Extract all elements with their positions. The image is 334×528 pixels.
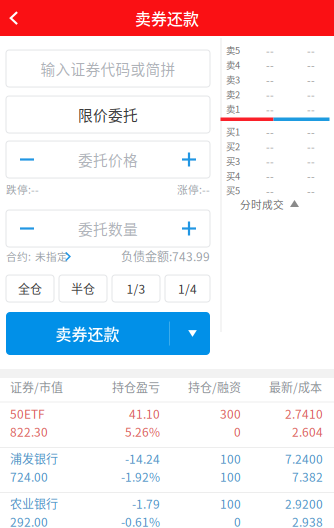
staticText: -14.24	[125, 450, 160, 467]
staticText: 50ETF	[10, 405, 45, 422]
staticText: 负债金额:743.99	[121, 247, 210, 265]
staticText: 724.00	[10, 468, 48, 485]
button[interactable]: More order types	[170, 312, 210, 355]
staticText: 1/4	[178, 280, 197, 297]
staticText: 7.382	[292, 468, 323, 485]
staticText: --	[266, 153, 274, 169]
button[interactable]: 农业银行	[0, 493, 334, 528]
staticText: 持仓/融资	[188, 378, 241, 396]
button[interactable]: 合约: 未指定	[6, 249, 76, 263]
staticText: --	[266, 138, 274, 154]
staticText: --	[307, 101, 315, 116]
button[interactable]: 限价委托	[6, 96, 210, 133]
staticText: 卖4	[226, 58, 240, 71]
staticText: 卖3	[226, 73, 240, 86]
staticText: 2.938	[292, 513, 323, 528]
staticText: 300	[220, 405, 241, 422]
staticText: 5.26%	[125, 423, 160, 440]
staticText: 委托价格	[78, 149, 138, 170]
staticText: --	[307, 183, 315, 198]
staticText: 买1	[226, 125, 240, 138]
button[interactable]: 全仓	[6, 275, 54, 302]
staticText: 限价委托	[78, 104, 138, 125]
staticText: 卖5	[226, 43, 240, 57]
staticText: 半仓	[71, 280, 95, 297]
staticText: --	[266, 86, 274, 102]
staticText: --	[307, 168, 315, 183]
staticText: 全仓	[18, 280, 42, 297]
staticText: 292.00	[10, 513, 48, 528]
staticText: 买3	[226, 154, 240, 168]
staticText: 2.604	[292, 423, 323, 440]
staticText: 100	[220, 468, 241, 485]
staticText: 卖1	[226, 102, 240, 115]
staticText: 持仓盈亏	[112, 378, 160, 396]
button[interactable]: Back	[0, 1, 28, 35]
staticText: -1.79	[132, 495, 160, 512]
button[interactable]: 1/4	[165, 275, 210, 302]
staticText: --	[307, 86, 315, 102]
staticText: 证券/市值	[10, 378, 63, 396]
staticText: 2.9200	[285, 495, 323, 512]
staticText: 100	[220, 495, 241, 512]
staticText: --	[266, 168, 274, 183]
staticText: 买2	[226, 139, 240, 153]
staticText: 100	[220, 450, 241, 467]
button[interactable]: Increase 委托价格	[169, 142, 209, 177]
staticText: 买4	[226, 169, 240, 182]
button[interactable]: 卖券还款	[6, 312, 169, 355]
button[interactable]: Increase 委托数量	[169, 211, 209, 246]
staticText: 0	[234, 423, 241, 440]
button[interactable]: 分时成交	[240, 197, 320, 211]
button[interactable]: 1/3	[112, 275, 160, 302]
staticText: --	[266, 72, 274, 87]
staticText: 跌停:--	[6, 181, 39, 197]
staticText: 输入证券代码或简拼	[40, 58, 175, 79]
staticText: 卖券还款	[135, 6, 199, 30]
staticText: 7.2400	[285, 450, 323, 467]
staticText: -0.61%	[121, 513, 160, 528]
staticText: --	[266, 124, 274, 139]
staticText: 农业银行	[10, 495, 58, 512]
staticText: --	[266, 42, 274, 58]
staticText: 最新/成本	[269, 378, 322, 396]
staticText: 买5	[226, 183, 240, 197]
staticText: --	[266, 183, 274, 198]
button[interactable]: 50ETF	[0, 403, 334, 447]
staticText: -1.92%	[121, 468, 160, 485]
button[interactable]: 浦发银行	[0, 448, 334, 492]
staticText: --	[307, 42, 315, 58]
staticText: --	[307, 124, 315, 139]
staticText: --	[307, 138, 315, 154]
staticText: 1/3	[126, 280, 145, 297]
staticText: 分时成交	[240, 196, 284, 212]
staticText: 0	[234, 513, 241, 528]
staticText: --	[266, 57, 274, 72]
staticText: 2.7410	[285, 405, 323, 422]
staticText: --	[266, 101, 274, 116]
button[interactable]: Decrease 委托数量	[7, 211, 47, 246]
button[interactable]: 半仓	[59, 275, 107, 302]
staticText: 浦发银行	[10, 450, 58, 467]
staticText: 卖券还款	[55, 322, 119, 345]
staticText: 委托数量	[78, 218, 138, 239]
button[interactable]: Decrease 委托价格	[7, 142, 47, 177]
staticText: --	[307, 57, 315, 72]
staticText: 卖2	[226, 87, 240, 101]
staticText: 合约: 未指定	[6, 248, 68, 264]
staticText: --	[307, 153, 315, 169]
staticText: 涨停:--	[177, 181, 210, 197]
staticText: 822.30	[10, 423, 48, 440]
staticText: 41.10	[129, 405, 160, 422]
staticText: --	[307, 72, 315, 87]
